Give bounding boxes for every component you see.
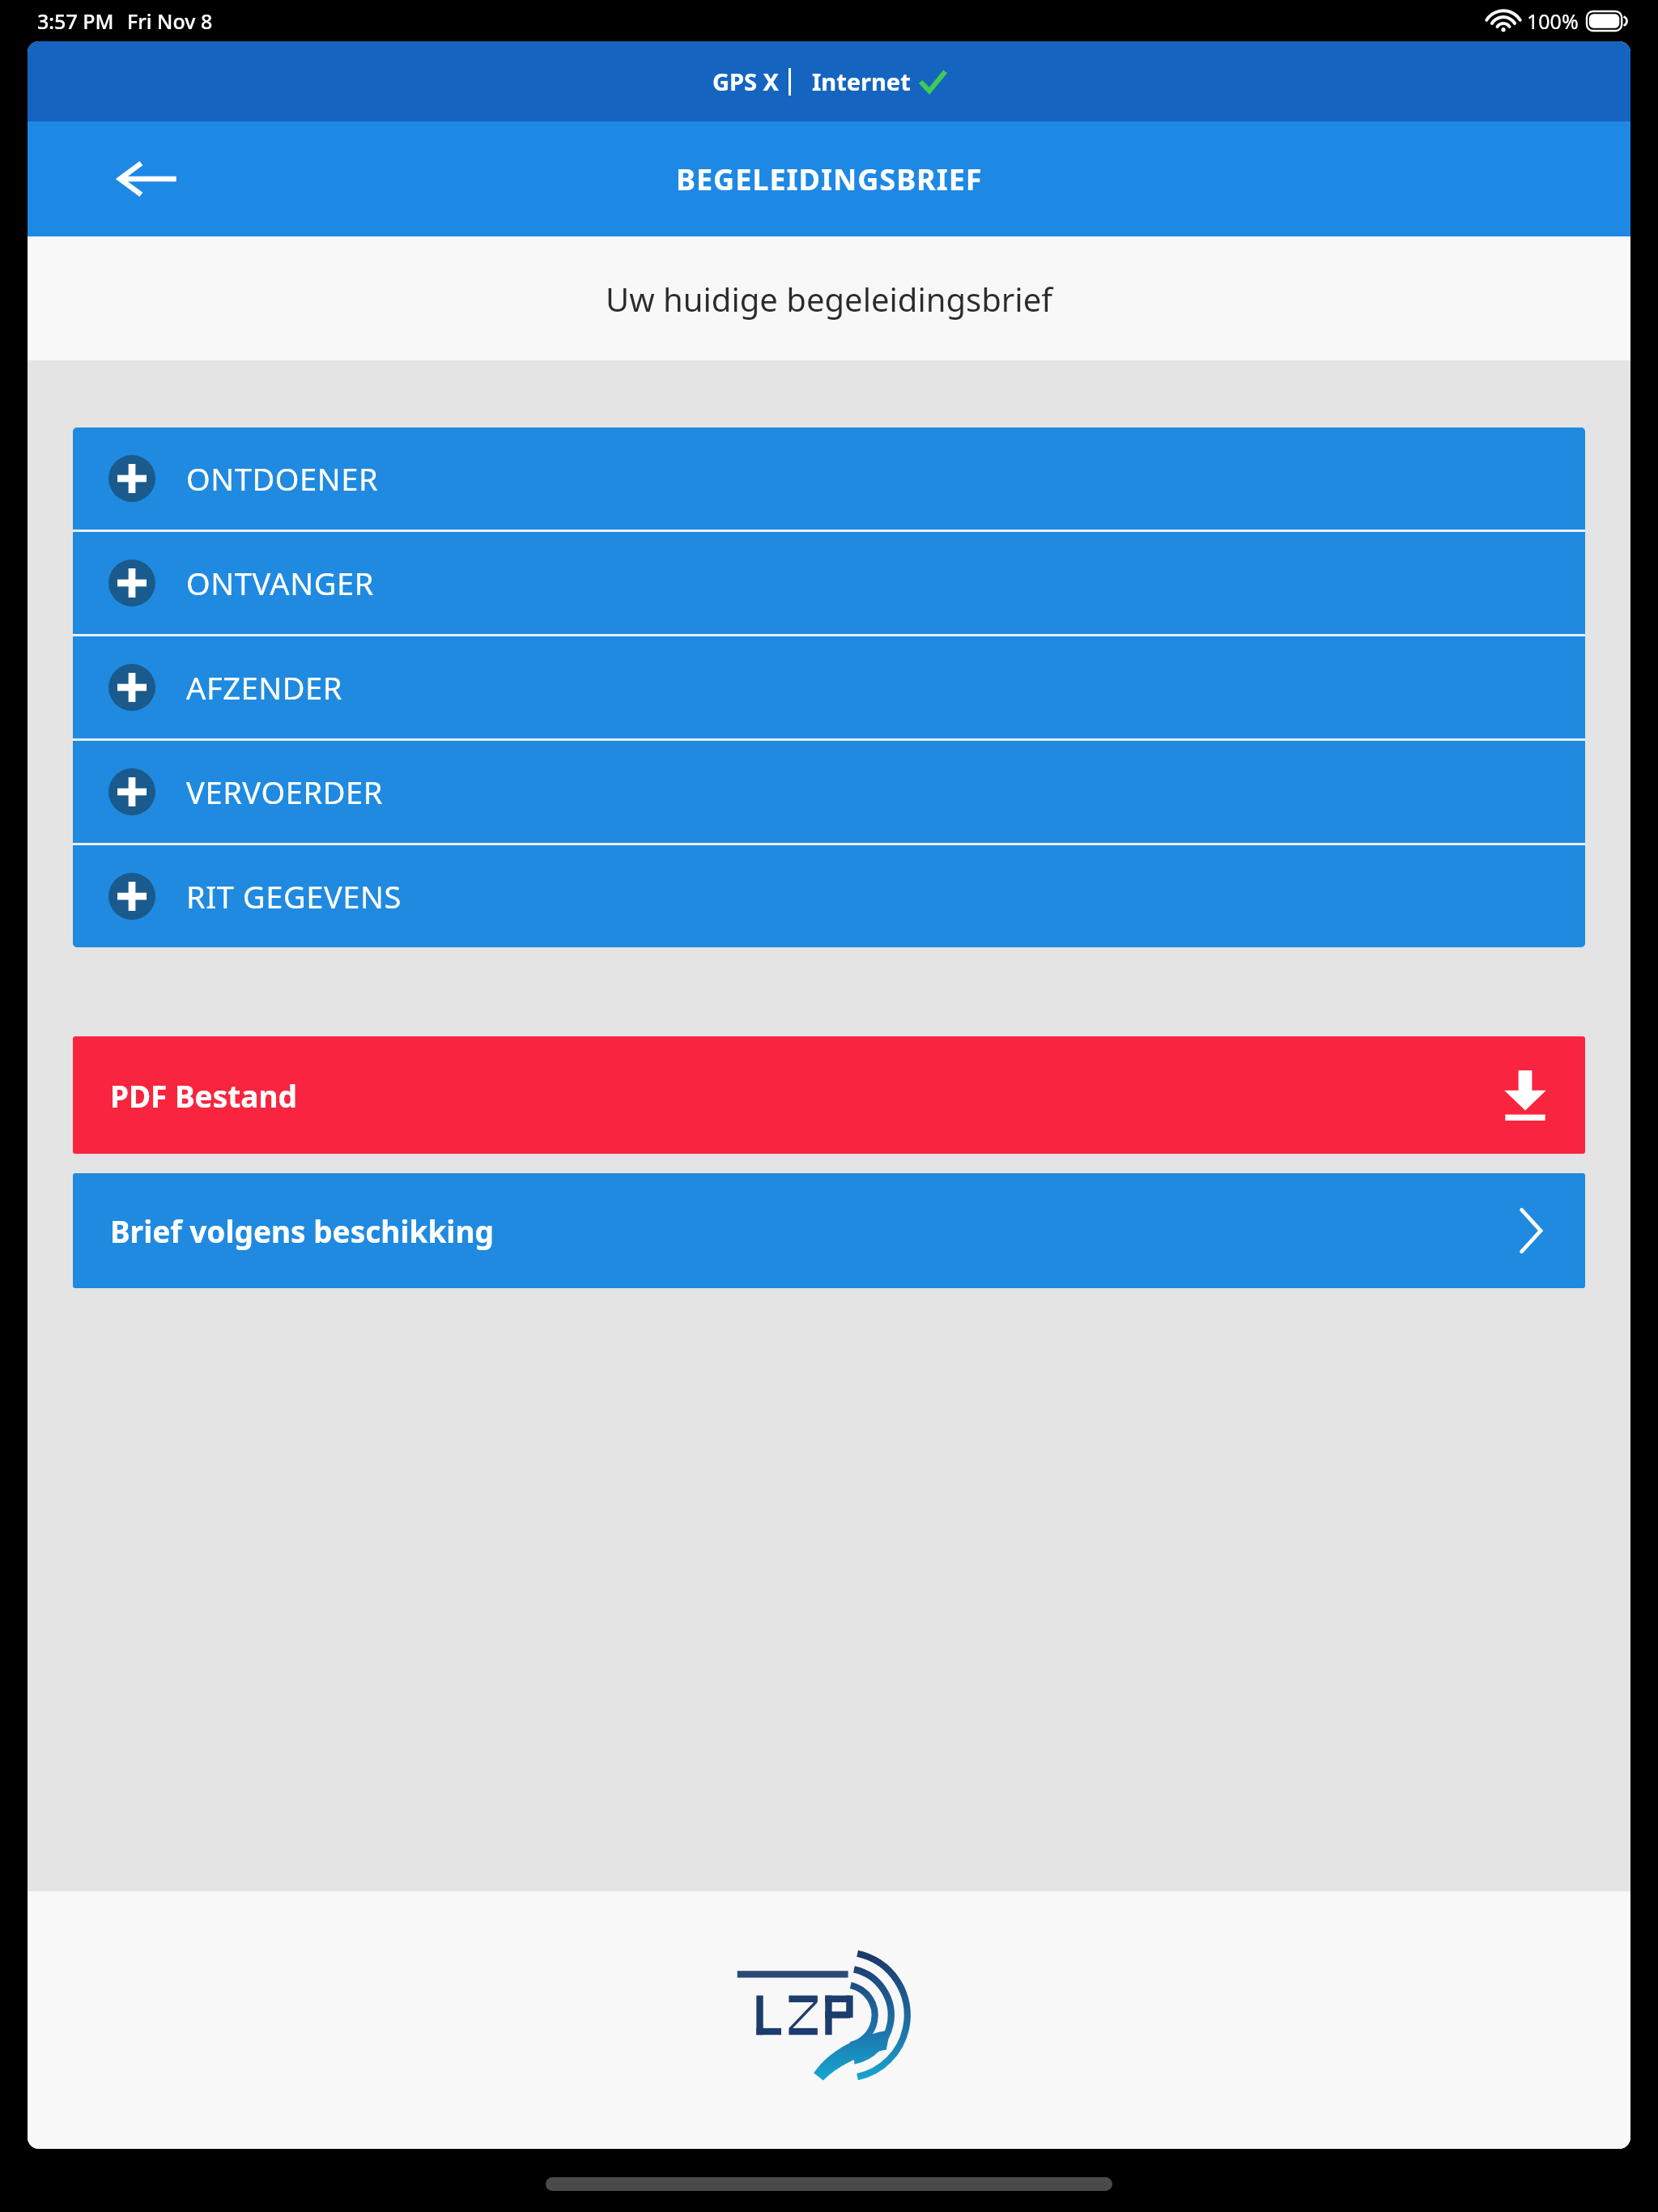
button[interactable]: AFZENDER [73, 636, 1585, 738]
button[interactable]: RIT GEGEVENS [73, 845, 1585, 947]
button[interactable]: PDF Bestand [73, 1036, 1585, 1154]
staticText: Internet [812, 66, 911, 97]
staticText: ONTDOENER [186, 457, 379, 500]
button[interactable]: Brief volgens beschikking [73, 1173, 1585, 1288]
staticText: Brief volgens beschikking [110, 1210, 494, 1251]
staticText: 3:57 PM [37, 7, 114, 35]
button[interactable]: ONTVANGER [73, 532, 1585, 634]
button[interactable]: ONTDOENER [73, 428, 1585, 530]
button[interactable]: VERVOERDER [73, 741, 1585, 843]
staticText: GPS X [712, 66, 779, 97]
staticText: Fri Nov 8 [127, 7, 213, 35]
staticText: BEGELEIDINGSBRIEF [676, 160, 983, 199]
staticText: 100% [1527, 7, 1579, 35]
staticText: VERVOERDER [186, 771, 383, 813]
staticText: ONTVANGER [186, 562, 374, 604]
button[interactable]: Back [117, 148, 178, 210]
staticText: Uw huidige begeleidingsbrief [606, 277, 1052, 321]
staticText: PDF Bestand [110, 1075, 297, 1116]
staticText: RIT GEGEVENS [186, 875, 402, 917]
staticText: AFZENDER [186, 666, 343, 708]
